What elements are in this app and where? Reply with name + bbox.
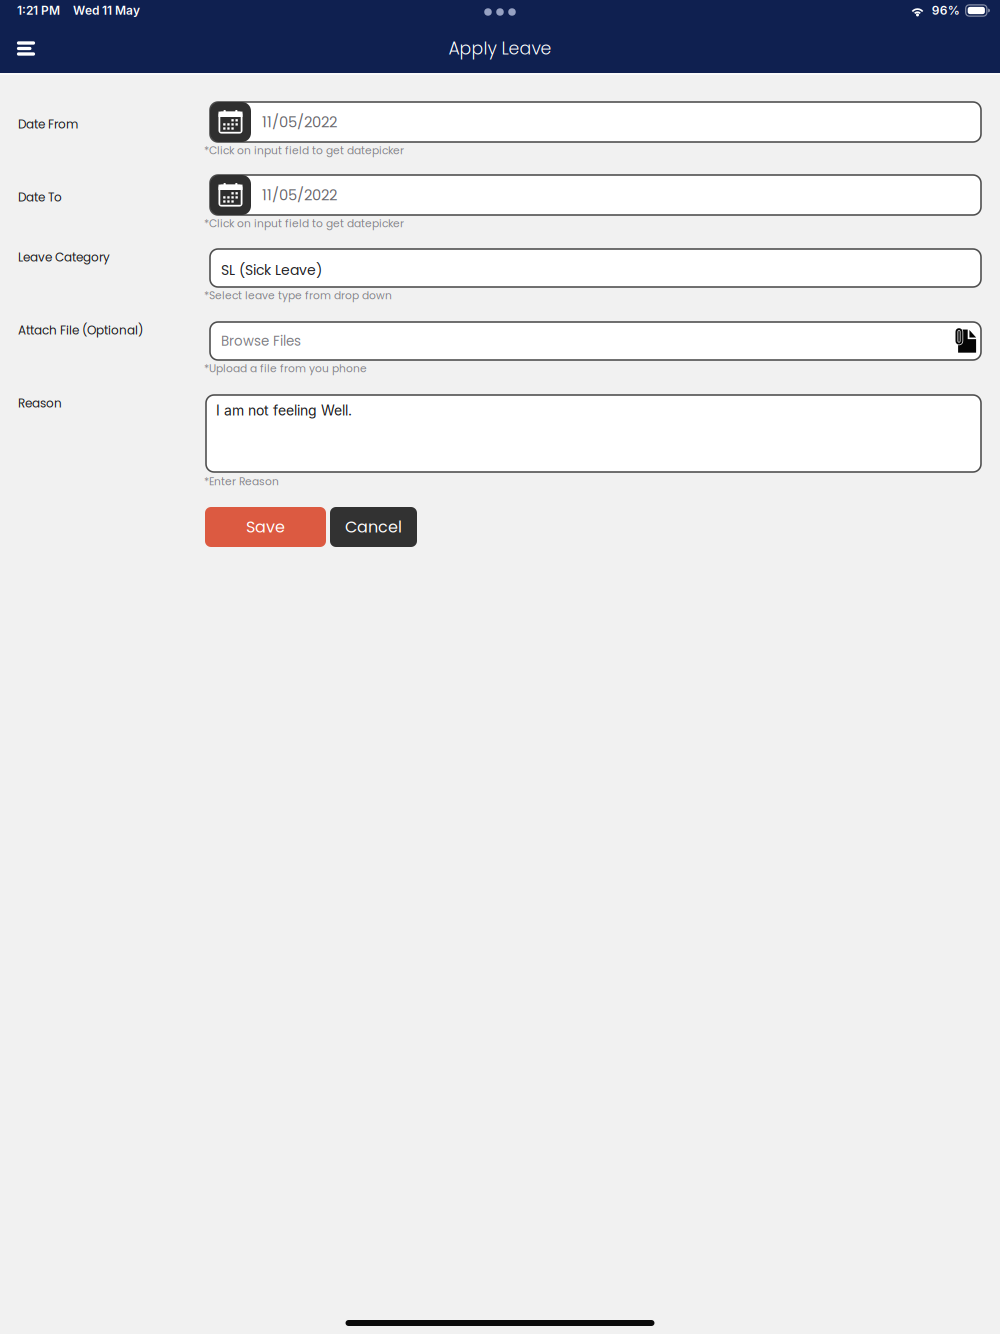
staticText: Cancel [345, 516, 402, 538]
staticText: 11/05/2022 [262, 185, 337, 205]
button[interactable]: SL (Sick Leave) [210, 249, 981, 287]
staticText: Wed 11 May [73, 3, 140, 18]
staticText: 11/05/2022 [262, 112, 337, 132]
staticText: Leave Category [18, 249, 110, 266]
button[interactable]: 11/05/2022 [210, 102, 981, 142]
staticText: 96% [932, 3, 960, 18]
button[interactable]: Browse Files [210, 322, 981, 360]
button[interactable]: 11/05/2022 [210, 175, 981, 215]
staticText: *Enter Reason [204, 474, 279, 489]
button[interactable]: Save [205, 507, 326, 547]
staticText: *Upload a file from you phone [204, 361, 367, 376]
staticText: Reason [18, 395, 62, 412]
button[interactable]: Menu [1, 25, 51, 71]
staticText: Apply Leave [448, 36, 551, 61]
staticText: Date To [18, 189, 62, 206]
staticText: *Click on input field to get datepicker [204, 216, 404, 231]
staticText: *Select leave type from drop down [204, 288, 392, 303]
staticText: *Click on input field to get datepicker [204, 143, 404, 158]
staticText: Browse Files [221, 332, 301, 350]
button[interactable]: Cancel [330, 507, 417, 547]
staticText: SL (Sick Leave) [221, 260, 322, 280]
staticText: Date From [18, 116, 78, 133]
staticText: I am not feeling Well. [216, 402, 352, 419]
staticText: Attach File (Optional) [18, 322, 143, 339]
staticText: 1:21 PM [17, 3, 60, 18]
staticText: Save [246, 516, 285, 538]
